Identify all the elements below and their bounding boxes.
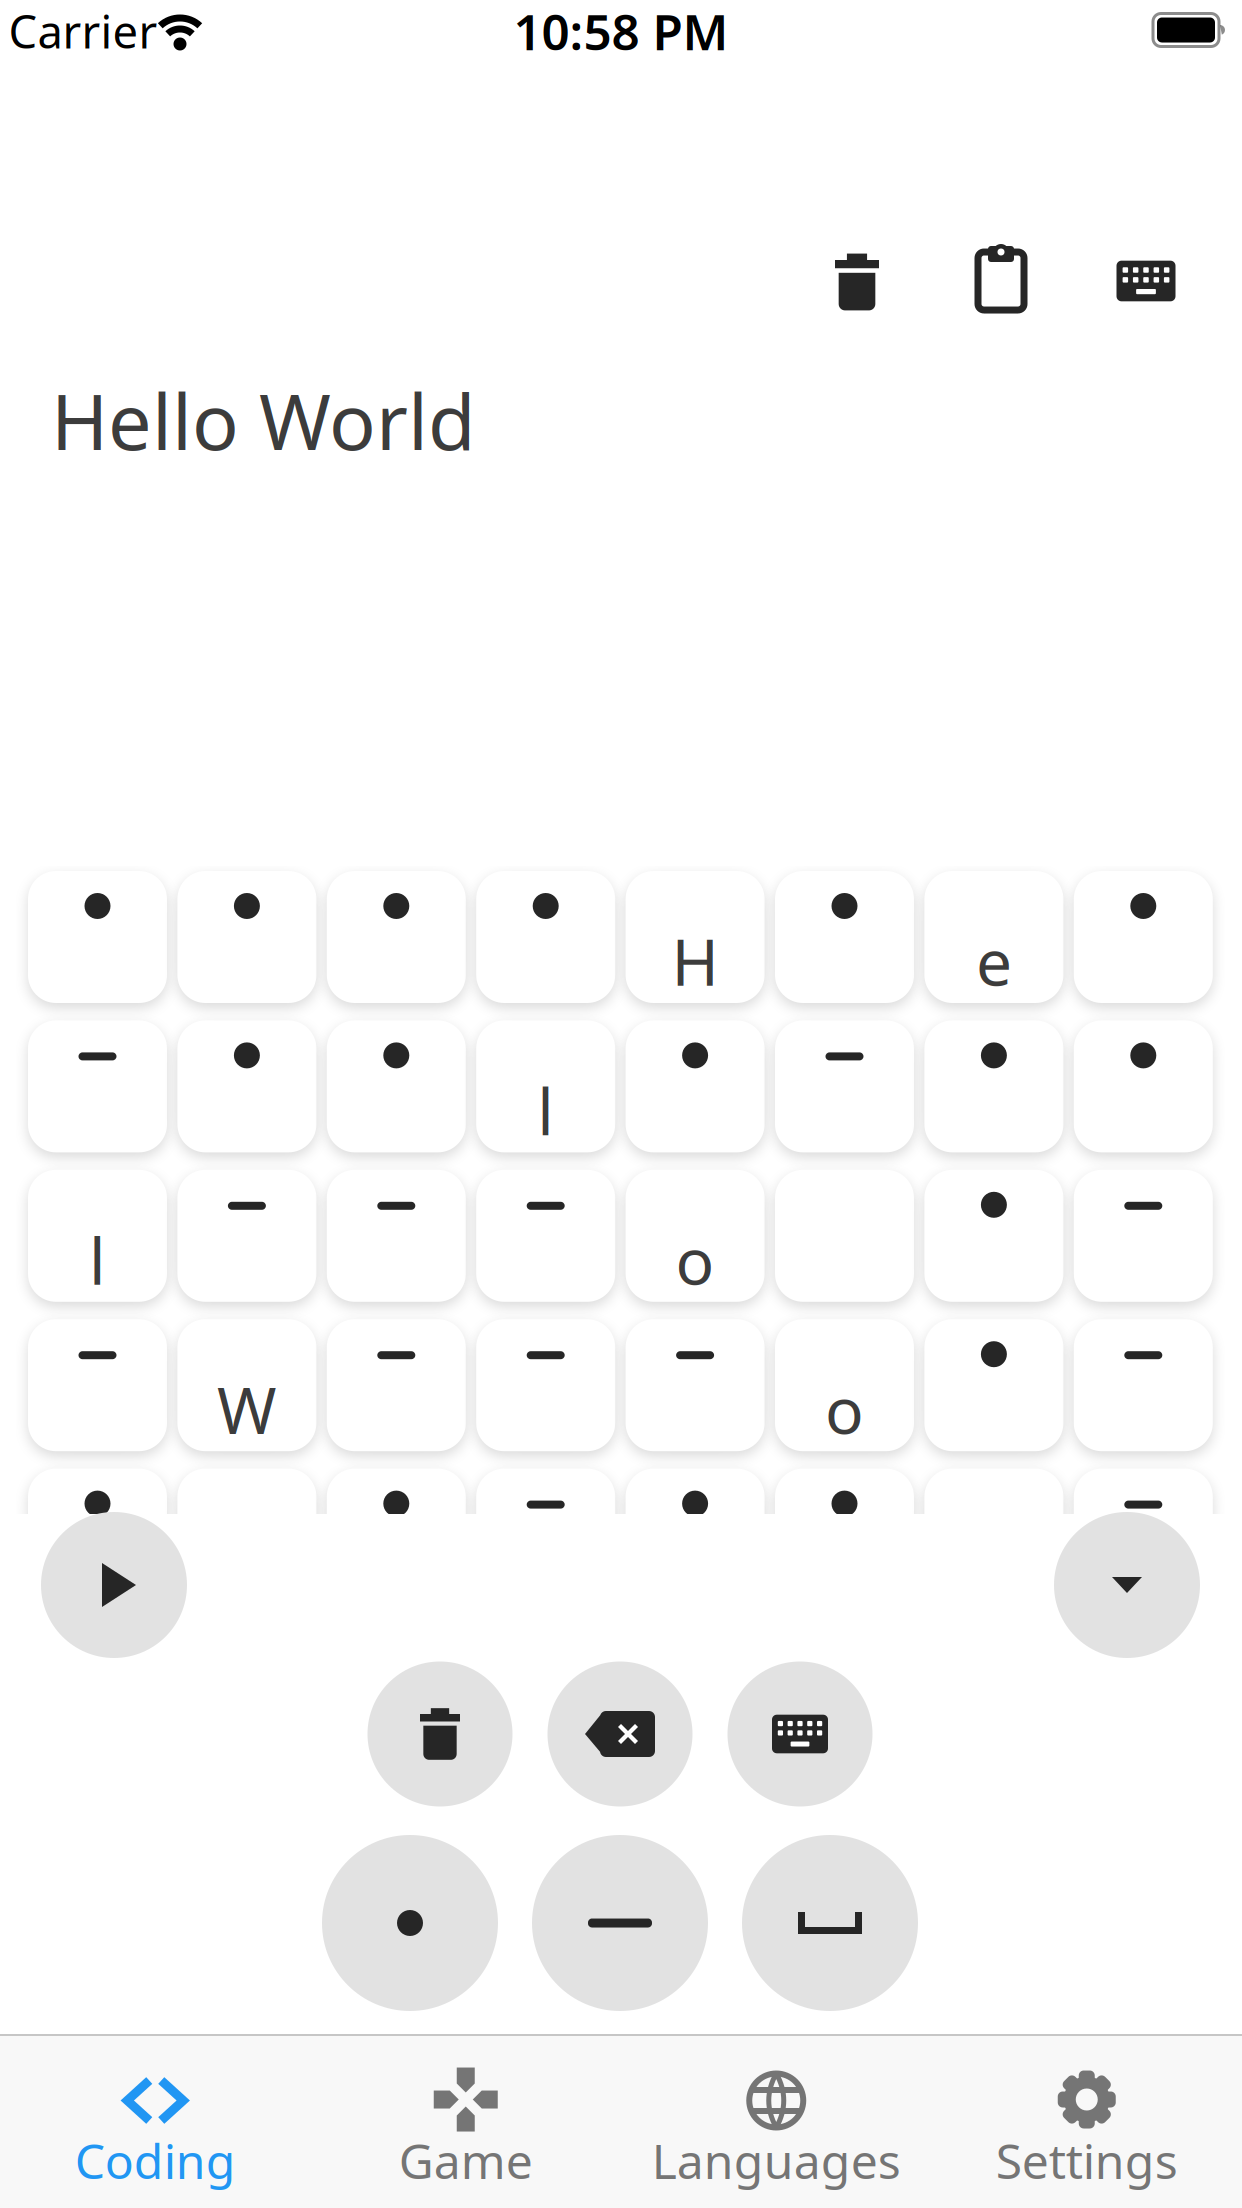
staticText: l bbox=[537, 1068, 554, 1153]
staticText: Carrier bbox=[8, 1, 157, 61]
staticText: l bbox=[89, 1217, 106, 1302]
staticText: 10:58 PM bbox=[513, 0, 728, 64]
button[interactable]: Delete all bbox=[367, 1661, 512, 1806]
button[interactable]: Coding bbox=[0, 2035, 310, 2207]
button[interactable]: Game bbox=[311, 2035, 621, 2207]
button[interactable]: Keyboard bbox=[727, 1661, 872, 1806]
staticText: Languages bbox=[652, 2129, 901, 2192]
staticText: e bbox=[976, 918, 1012, 1003]
button[interactable]: Settings bbox=[932, 2035, 1242, 2207]
button[interactable]: Paste bbox=[961, 239, 1041, 319]
button[interactable]: Play bbox=[41, 1512, 187, 1658]
button[interactable]: Collapse bbox=[1054, 1512, 1200, 1658]
staticText: Hello World bbox=[51, 369, 476, 471]
button[interactable]: Dot bbox=[322, 1835, 498, 2011]
button[interactable]: Dash bbox=[532, 1835, 708, 2011]
staticText: d bbox=[377, 1665, 416, 1750]
button[interactable]: Show keyboard bbox=[1106, 241, 1186, 321]
staticText: Coding bbox=[75, 2129, 236, 2192]
staticText: o bbox=[676, 1217, 715, 1302]
staticText: H bbox=[672, 918, 719, 1003]
button[interactable]: Space bbox=[742, 1835, 918, 2011]
staticText: Settings bbox=[996, 2129, 1178, 2192]
button[interactable]: Languages bbox=[621, 2035, 931, 2207]
staticText: o bbox=[825, 1367, 864, 1452]
button[interactable]: Clear text bbox=[817, 242, 897, 322]
staticText: Game bbox=[399, 2129, 533, 2192]
staticText: W bbox=[217, 1367, 277, 1452]
button[interactable]: Backspace bbox=[547, 1661, 692, 1806]
